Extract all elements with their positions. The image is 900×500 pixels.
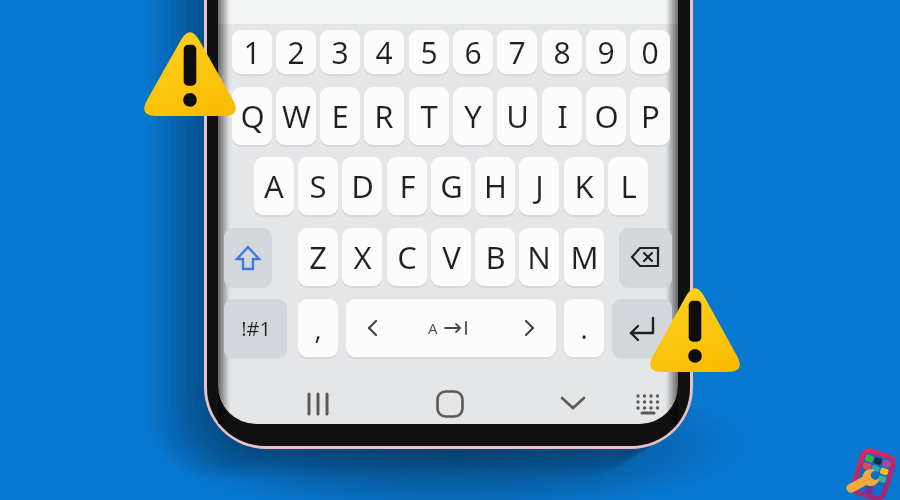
staticText: 5 (420, 32, 438, 73)
button[interactable]: 6 (453, 30, 493, 74)
button[interactable]: B (475, 228, 515, 286)
button[interactable]: 5 (409, 30, 449, 74)
button[interactable]: 1 (232, 30, 272, 74)
staticText: 2 (287, 32, 305, 73)
button[interactable]: 0 (630, 30, 670, 74)
staticText: W (282, 95, 311, 137)
button[interactable]: X (342, 228, 382, 286)
button[interactable]: I (542, 87, 582, 145)
staticText: 4 (375, 32, 393, 73)
button[interactable]: M (564, 228, 604, 286)
staticText: V (442, 236, 461, 278)
staticText: E (331, 95, 349, 137)
button[interactable]: S (298, 157, 338, 215)
staticText: . (580, 310, 588, 347)
staticText: A (264, 165, 284, 207)
staticText: B (485, 236, 506, 278)
staticText: D (351, 165, 374, 207)
staticText: X (353, 236, 372, 278)
button[interactable] (436, 390, 464, 418)
staticText: C (397, 236, 417, 278)
staticText: F (399, 165, 416, 207)
staticText: O (594, 95, 619, 137)
staticText: L (620, 165, 637, 207)
button[interactable]: L (608, 157, 648, 215)
button[interactable]: , (298, 299, 338, 357)
button[interactable]: F (387, 157, 427, 215)
button[interactable]: T (409, 87, 449, 145)
button[interactable]: N (519, 228, 559, 286)
staticText: 1 (243, 32, 261, 73)
button[interactable]: E (320, 87, 360, 145)
button[interactable]: K (564, 157, 604, 215)
staticText: J (535, 165, 544, 207)
button[interactable]: U (497, 87, 537, 145)
button[interactable]: A (346, 299, 556, 357)
staticText: !#1 (241, 315, 271, 342)
button[interactable]: Z (298, 228, 338, 286)
button[interactable]: P (630, 87, 670, 145)
button[interactable]: D (342, 157, 382, 215)
staticText: P (641, 95, 660, 137)
button[interactable]: 4 (364, 30, 404, 74)
button[interactable]: 8 (542, 30, 582, 74)
staticText: 3 (331, 32, 349, 73)
button[interactable] (224, 228, 272, 286)
button[interactable] (560, 394, 586, 412)
button[interactable]: C (387, 228, 427, 286)
button[interactable]: Q (232, 87, 272, 145)
staticText: 7 (508, 32, 526, 73)
button[interactable]: H (475, 157, 515, 215)
staticText: I (557, 95, 568, 137)
button[interactable]: . (564, 299, 604, 357)
button[interactable]: 2 (276, 30, 316, 74)
button[interactable]: O (586, 87, 626, 145)
staticText: S (309, 165, 327, 207)
staticText: R (374, 95, 394, 137)
button[interactable]: 3 (320, 30, 360, 74)
staticText: Z (309, 236, 327, 278)
button[interactable] (619, 228, 672, 286)
staticText: Q (240, 95, 265, 137)
button[interactable]: G (431, 157, 471, 215)
staticText: K (574, 165, 594, 207)
button[interactable]: J (519, 157, 559, 215)
staticText: 8 (553, 32, 571, 73)
button[interactable]: W (276, 87, 316, 145)
button[interactable] (634, 393, 662, 415)
staticText: U (506, 95, 529, 137)
button[interactable]: 7 (497, 30, 537, 74)
button[interactable]: !#1 (224, 299, 287, 357)
button[interactable] (305, 392, 335, 416)
button[interactable]: V (431, 228, 471, 286)
staticText: N (527, 236, 551, 278)
button[interactable]: R (364, 87, 404, 145)
button[interactable]: Y (453, 87, 493, 145)
staticText: 6 (464, 32, 482, 73)
staticText: M (570, 236, 599, 278)
button[interactable]: A (254, 157, 294, 215)
staticText: 0 (641, 32, 659, 73)
staticText: A (428, 318, 438, 338)
staticText: G (440, 165, 463, 207)
staticText: T (420, 95, 438, 137)
staticText: Y (464, 95, 482, 137)
button[interactable]: 9 (586, 30, 626, 74)
staticText: , (314, 310, 322, 347)
button[interactable] (612, 299, 672, 357)
staticText: H (484, 165, 507, 207)
staticText: 9 (597, 32, 615, 73)
